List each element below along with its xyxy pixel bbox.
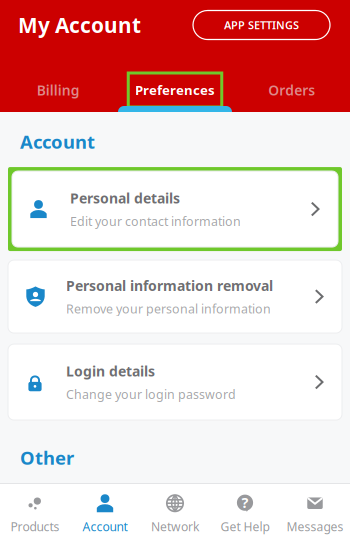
staticText: Change your login password (66, 386, 236, 402)
staticText: Orders (268, 81, 315, 99)
button[interactable]: Messages (280, 483, 350, 546)
button[interactable]: Billing (0, 50, 117, 112)
staticText: Billing (37, 81, 80, 99)
staticText: APP SETTINGS (224, 18, 299, 32)
staticText: ? (241, 493, 248, 512)
button[interactable]: Account (70, 483, 140, 546)
staticText: My Account (18, 11, 141, 39)
button[interactable]: APP SETTINGS (193, 10, 330, 39)
staticText: Remove your personal information (66, 300, 271, 317)
staticText: Preferences (135, 81, 215, 99)
staticText: Login details (66, 362, 155, 381)
button[interactable]: Personal details (12, 171, 338, 247)
button[interactable]: Orders (233, 50, 350, 112)
staticText: Other (20, 445, 74, 470)
button[interactable]: Login details (8, 344, 342, 420)
button[interactable]: Network (140, 483, 210, 546)
staticText: Network (151, 518, 199, 535)
staticText: Edit your contact information (70, 213, 241, 229)
staticText: Account (82, 518, 127, 535)
staticText: Messages (286, 518, 343, 535)
staticText: Get Help (220, 518, 269, 535)
staticText: Products (10, 518, 59, 535)
button[interactable]: Personal information removal (8, 260, 342, 333)
button[interactable]: ? (210, 483, 280, 546)
button[interactable]: Preferences (117, 50, 233, 112)
staticText: Personal information removal (66, 276, 273, 295)
staticText: Account (20, 129, 95, 154)
staticText: Personal details (70, 189, 180, 208)
button[interactable]: Products (0, 483, 70, 546)
